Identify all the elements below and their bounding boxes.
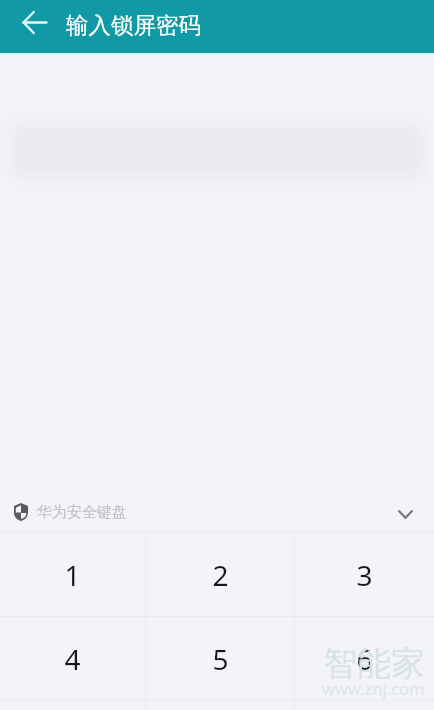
staticText: 2	[212, 556, 229, 594]
button[interactable]: Back	[13, 1, 55, 43]
button[interactable]: 6	[295, 617, 434, 700]
staticText: 6	[356, 640, 373, 678]
button[interactable]: 3	[295, 533, 434, 616]
button[interactable]: 1	[0, 533, 145, 616]
button[interactable]: 2	[146, 533, 294, 616]
staticText: www.znj.com	[322, 677, 425, 699]
staticText: 5	[212, 640, 229, 678]
button[interactable]: 5	[146, 617, 294, 700]
button[interactable]: 4	[0, 617, 145, 700]
staticText: 3	[356, 556, 373, 594]
staticText: 输入锁屏密码	[66, 11, 201, 39]
button[interactable]: 华为安全键盘	[0, 492, 150, 532]
staticText: 4	[64, 640, 81, 678]
staticText: 华为安全键盘	[37, 503, 127, 522]
staticText: 1	[64, 556, 81, 594]
staticText: 智能家	[323, 642, 425, 685]
button[interactable]: Collapse keyboard	[387, 496, 423, 532]
